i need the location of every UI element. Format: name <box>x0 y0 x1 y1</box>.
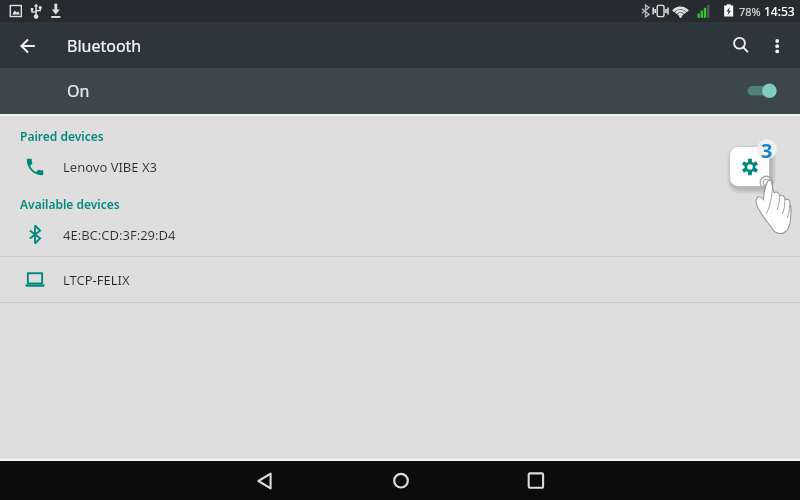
staticText: Available devices <box>20 196 120 212</box>
staticText: Paired devices <box>20 128 104 144</box>
button[interactable]: Recent apps <box>500 461 571 500</box>
staticText: 4E:BC:CD:3F:29:D4 <box>63 226 176 244</box>
button[interactable]: Back <box>230 461 301 500</box>
button[interactable]: On <box>0 68 800 114</box>
button[interactable]: 4E:BC:CD:3F:29:D4 <box>0 212 800 257</box>
button[interactable]: Lenovo VIBE X3 <box>0 144 800 190</box>
staticText: Bluetooth <box>67 35 142 57</box>
button[interactable]: Navigate up <box>5 22 51 68</box>
staticText: 14:53 <box>764 3 795 19</box>
staticText: LTCP-FELIX <box>63 271 130 289</box>
button[interactable]: Search <box>718 22 763 68</box>
button[interactable]: LTCP-FELIX <box>0 257 800 302</box>
staticText: Lenovo VIBE X3 <box>63 158 157 176</box>
staticText: 3 <box>761 137 773 159</box>
button[interactable]: More options <box>765 22 788 68</box>
staticText: On <box>67 80 90 102</box>
button[interactable]: Settings <box>730 147 769 186</box>
staticText: 78% <box>739 4 761 19</box>
button[interactable]: Home <box>365 461 436 500</box>
